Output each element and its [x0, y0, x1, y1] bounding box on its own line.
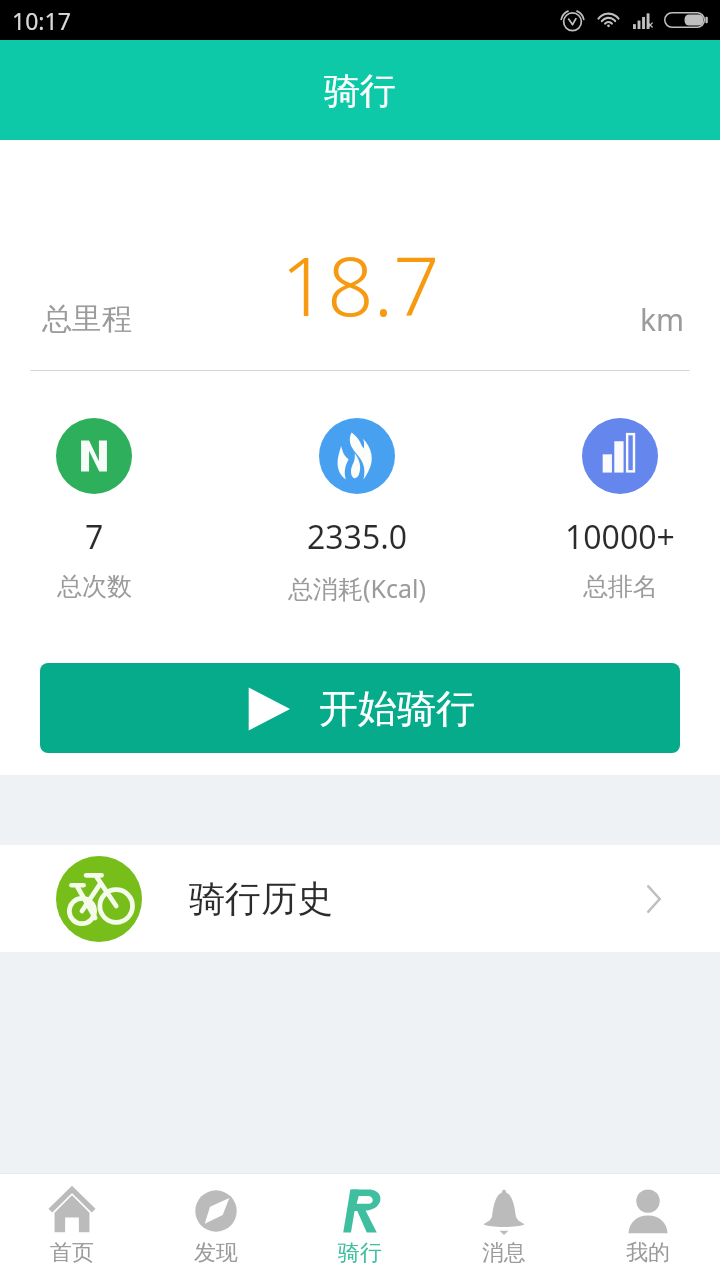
staticText: 发现 — [194, 1239, 238, 1267]
button[interactable]: Discover — [144, 1174, 288, 1280]
button[interactable]: 开始骑行 — [40, 663, 680, 753]
staticText: km — [640, 299, 685, 340]
staticText: 骑行 — [338, 1239, 382, 1267]
button[interactable]: Mine — [576, 1174, 720, 1280]
staticText: 骑行历史 — [189, 876, 333, 921]
other: Discover — [193, 1188, 239, 1234]
staticText: 10000+ — [565, 515, 675, 559]
other: Mine — [625, 1188, 671, 1234]
staticText: 开始骑行 — [319, 684, 475, 733]
button[interactable]: Messages — [432, 1174, 576, 1280]
staticText: 总次数 — [57, 571, 132, 602]
other: Ride — [339, 1188, 381, 1234]
button[interactable]: 骑行历史 — [0, 845, 720, 952]
staticText: 总里程 — [42, 300, 132, 338]
staticText: 总消耗(Kcal) — [288, 571, 426, 605]
button[interactable]: Home — [0, 1174, 144, 1280]
other: Messages — [481, 1188, 527, 1234]
staticText: 10:17 — [12, 5, 71, 36]
staticText: 骑行 — [324, 68, 396, 113]
staticText: 7 — [85, 515, 104, 559]
staticText: 18.7 — [281, 229, 440, 339]
staticText: 消息 — [482, 1239, 526, 1267]
button[interactable]: Ride — [288, 1174, 432, 1280]
other: Home — [49, 1188, 95, 1234]
staticText: 2335.0 — [307, 515, 408, 559]
staticText: 总排名 — [583, 571, 658, 602]
staticText: 首页 — [50, 1239, 94, 1267]
staticText: 我的 — [626, 1239, 670, 1267]
